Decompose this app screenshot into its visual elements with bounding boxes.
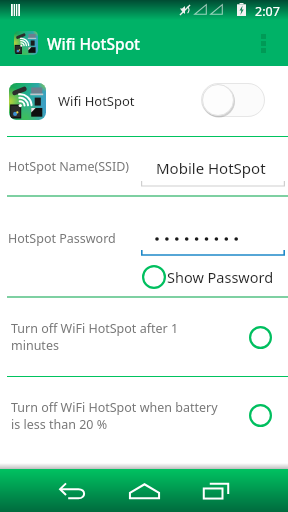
staticText: HotSpot Password bbox=[8, 230, 116, 247]
staticText: Wifi HotSpot bbox=[47, 33, 141, 54]
button[interactable]: Wifi HotSpot switch bbox=[201, 83, 265, 117]
staticText: Show Password bbox=[167, 267, 274, 287]
staticText: 2:07 bbox=[255, 3, 280, 20]
button[interactable]: Home bbox=[120, 469, 168, 512]
button[interactable]: Wifi HotSpot bbox=[0, 66, 288, 136]
staticText: Mobile HotSpot bbox=[156, 158, 266, 178]
button[interactable]: More options bbox=[248, 20, 278, 66]
button[interactable]: Recents bbox=[192, 469, 240, 512]
button[interactable]: Toggle auto off on low battery bbox=[244, 399, 276, 431]
staticText: Wifi HotSpot bbox=[58, 92, 135, 110]
button[interactable]: Show Password bbox=[141, 264, 274, 290]
staticText: Turn off WiFi HotSpot after 1 minutes bbox=[11, 320, 179, 354]
button[interactable]: Toggle auto off after time bbox=[244, 321, 276, 353]
staticText: Turn off WiFi HotSpot when battery is le… bbox=[11, 399, 218, 433]
button[interactable]: Back bbox=[48, 469, 96, 512]
staticText: HotSpot Name(SSID) bbox=[8, 158, 130, 175]
